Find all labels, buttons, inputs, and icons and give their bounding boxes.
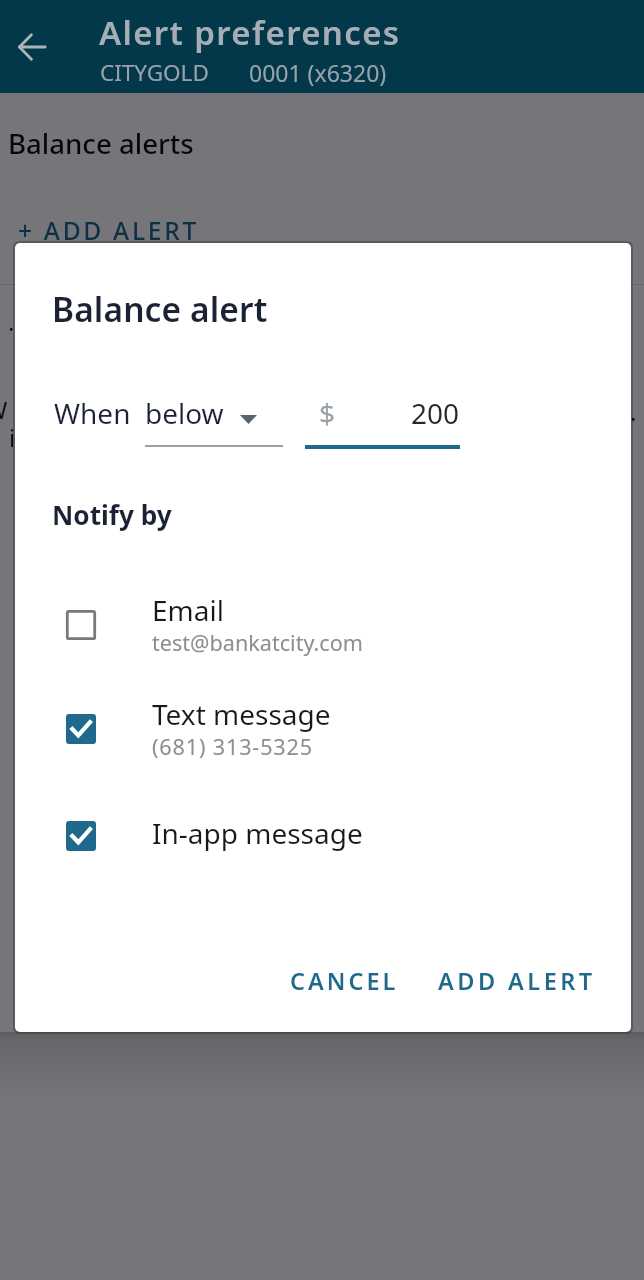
staticText: (681) 313-5325 [152,732,313,761]
staticText: CITYGOLD [100,57,209,88]
staticText: Alert preferences [99,10,401,55]
staticText: Text message [152,695,331,733]
button[interactable]: Email [15,575,631,671]
button[interactable]: Back [0,16,62,78]
staticText: test@bankatcity.com [152,628,363,657]
staticText: W [0,393,8,426]
staticText: . [8,305,15,338]
staticText: Notify by [52,497,172,533]
staticText: Balance alerts [8,124,194,162]
staticText: 200 [411,394,460,432]
button[interactable]: below [139,383,289,455]
button[interactable]: $ [298,383,478,455]
staticText: below [145,394,224,432]
staticText: + ADD ALERT [18,214,199,248]
staticText: CANCEL [290,965,399,997]
staticText: In-app message [152,814,363,852]
button[interactable]: + ADD ALERT [12,210,205,252]
staticText: ADD ALERT [438,965,596,997]
staticText: $ [319,394,336,432]
button[interactable]: In-app message [15,798,631,864]
staticText: When [54,394,131,432]
button[interactable]: Text message [15,679,631,775]
button[interactable]: ADD ALERT [423,950,611,1012]
staticText: 0001 (x6320) [249,57,387,88]
staticText: Balance alert [52,286,268,332]
staticText: . [630,395,637,428]
staticText: Email [152,591,224,629]
staticText: i [9,421,16,454]
button[interactable]: CANCEL [275,950,414,1012]
